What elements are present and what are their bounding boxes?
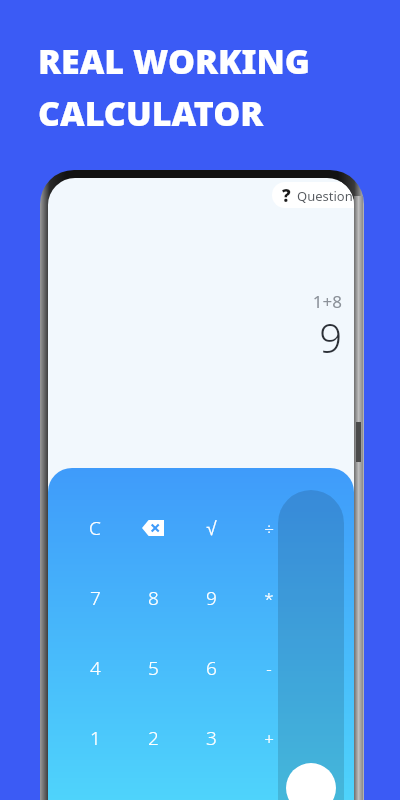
staticText: 7 — [90, 585, 101, 611]
staticText: ÷ — [264, 517, 274, 540]
button[interactable]: Backspace — [124, 508, 182, 548]
staticText: √ — [206, 518, 217, 539]
button[interactable]: - — [240, 648, 298, 688]
staticText: 3 — [206, 725, 217, 751]
button[interactable]: 2 — [124, 718, 182, 758]
staticText: 8 — [148, 585, 159, 611]
staticText: C — [89, 515, 101, 541]
staticText: Question — [297, 187, 353, 205]
button[interactable]: C — [66, 508, 124, 548]
button[interactable]: 4 — [66, 648, 124, 688]
button[interactable]: √ — [182, 508, 240, 548]
button[interactable]: 5 — [124, 648, 182, 688]
button[interactable]: 1 — [66, 718, 124, 758]
staticText: 1+8 — [48, 290, 342, 313]
staticText: CALCULATOR — [38, 90, 264, 136]
staticText: ? — [282, 184, 291, 207]
staticText: REAL WORKING — [38, 38, 310, 84]
staticText: 5 — [148, 655, 159, 681]
staticText: 1 — [90, 725, 101, 751]
staticText: 9 — [48, 310, 342, 364]
staticText: * — [264, 587, 274, 610]
button[interactable]: * — [240, 578, 298, 618]
staticText: - — [266, 657, 272, 680]
staticText: + — [264, 727, 274, 750]
staticText: 9 — [206, 585, 217, 611]
button[interactable]: 8 — [124, 578, 182, 618]
button[interactable]: ÷ — [240, 508, 298, 548]
button[interactable]: ? — [272, 182, 354, 208]
button[interactable]: 7 — [66, 578, 124, 618]
button[interactable]: Equals — [286, 763, 336, 800]
button[interactable]: 6 — [182, 648, 240, 688]
staticText: 2 — [148, 725, 159, 751]
staticText: 4 — [90, 655, 101, 681]
button[interactable]: + — [240, 718, 298, 758]
button[interactable]: 9 — [182, 578, 240, 618]
button[interactable]: 3 — [182, 718, 240, 758]
staticText: 6 — [206, 655, 217, 681]
